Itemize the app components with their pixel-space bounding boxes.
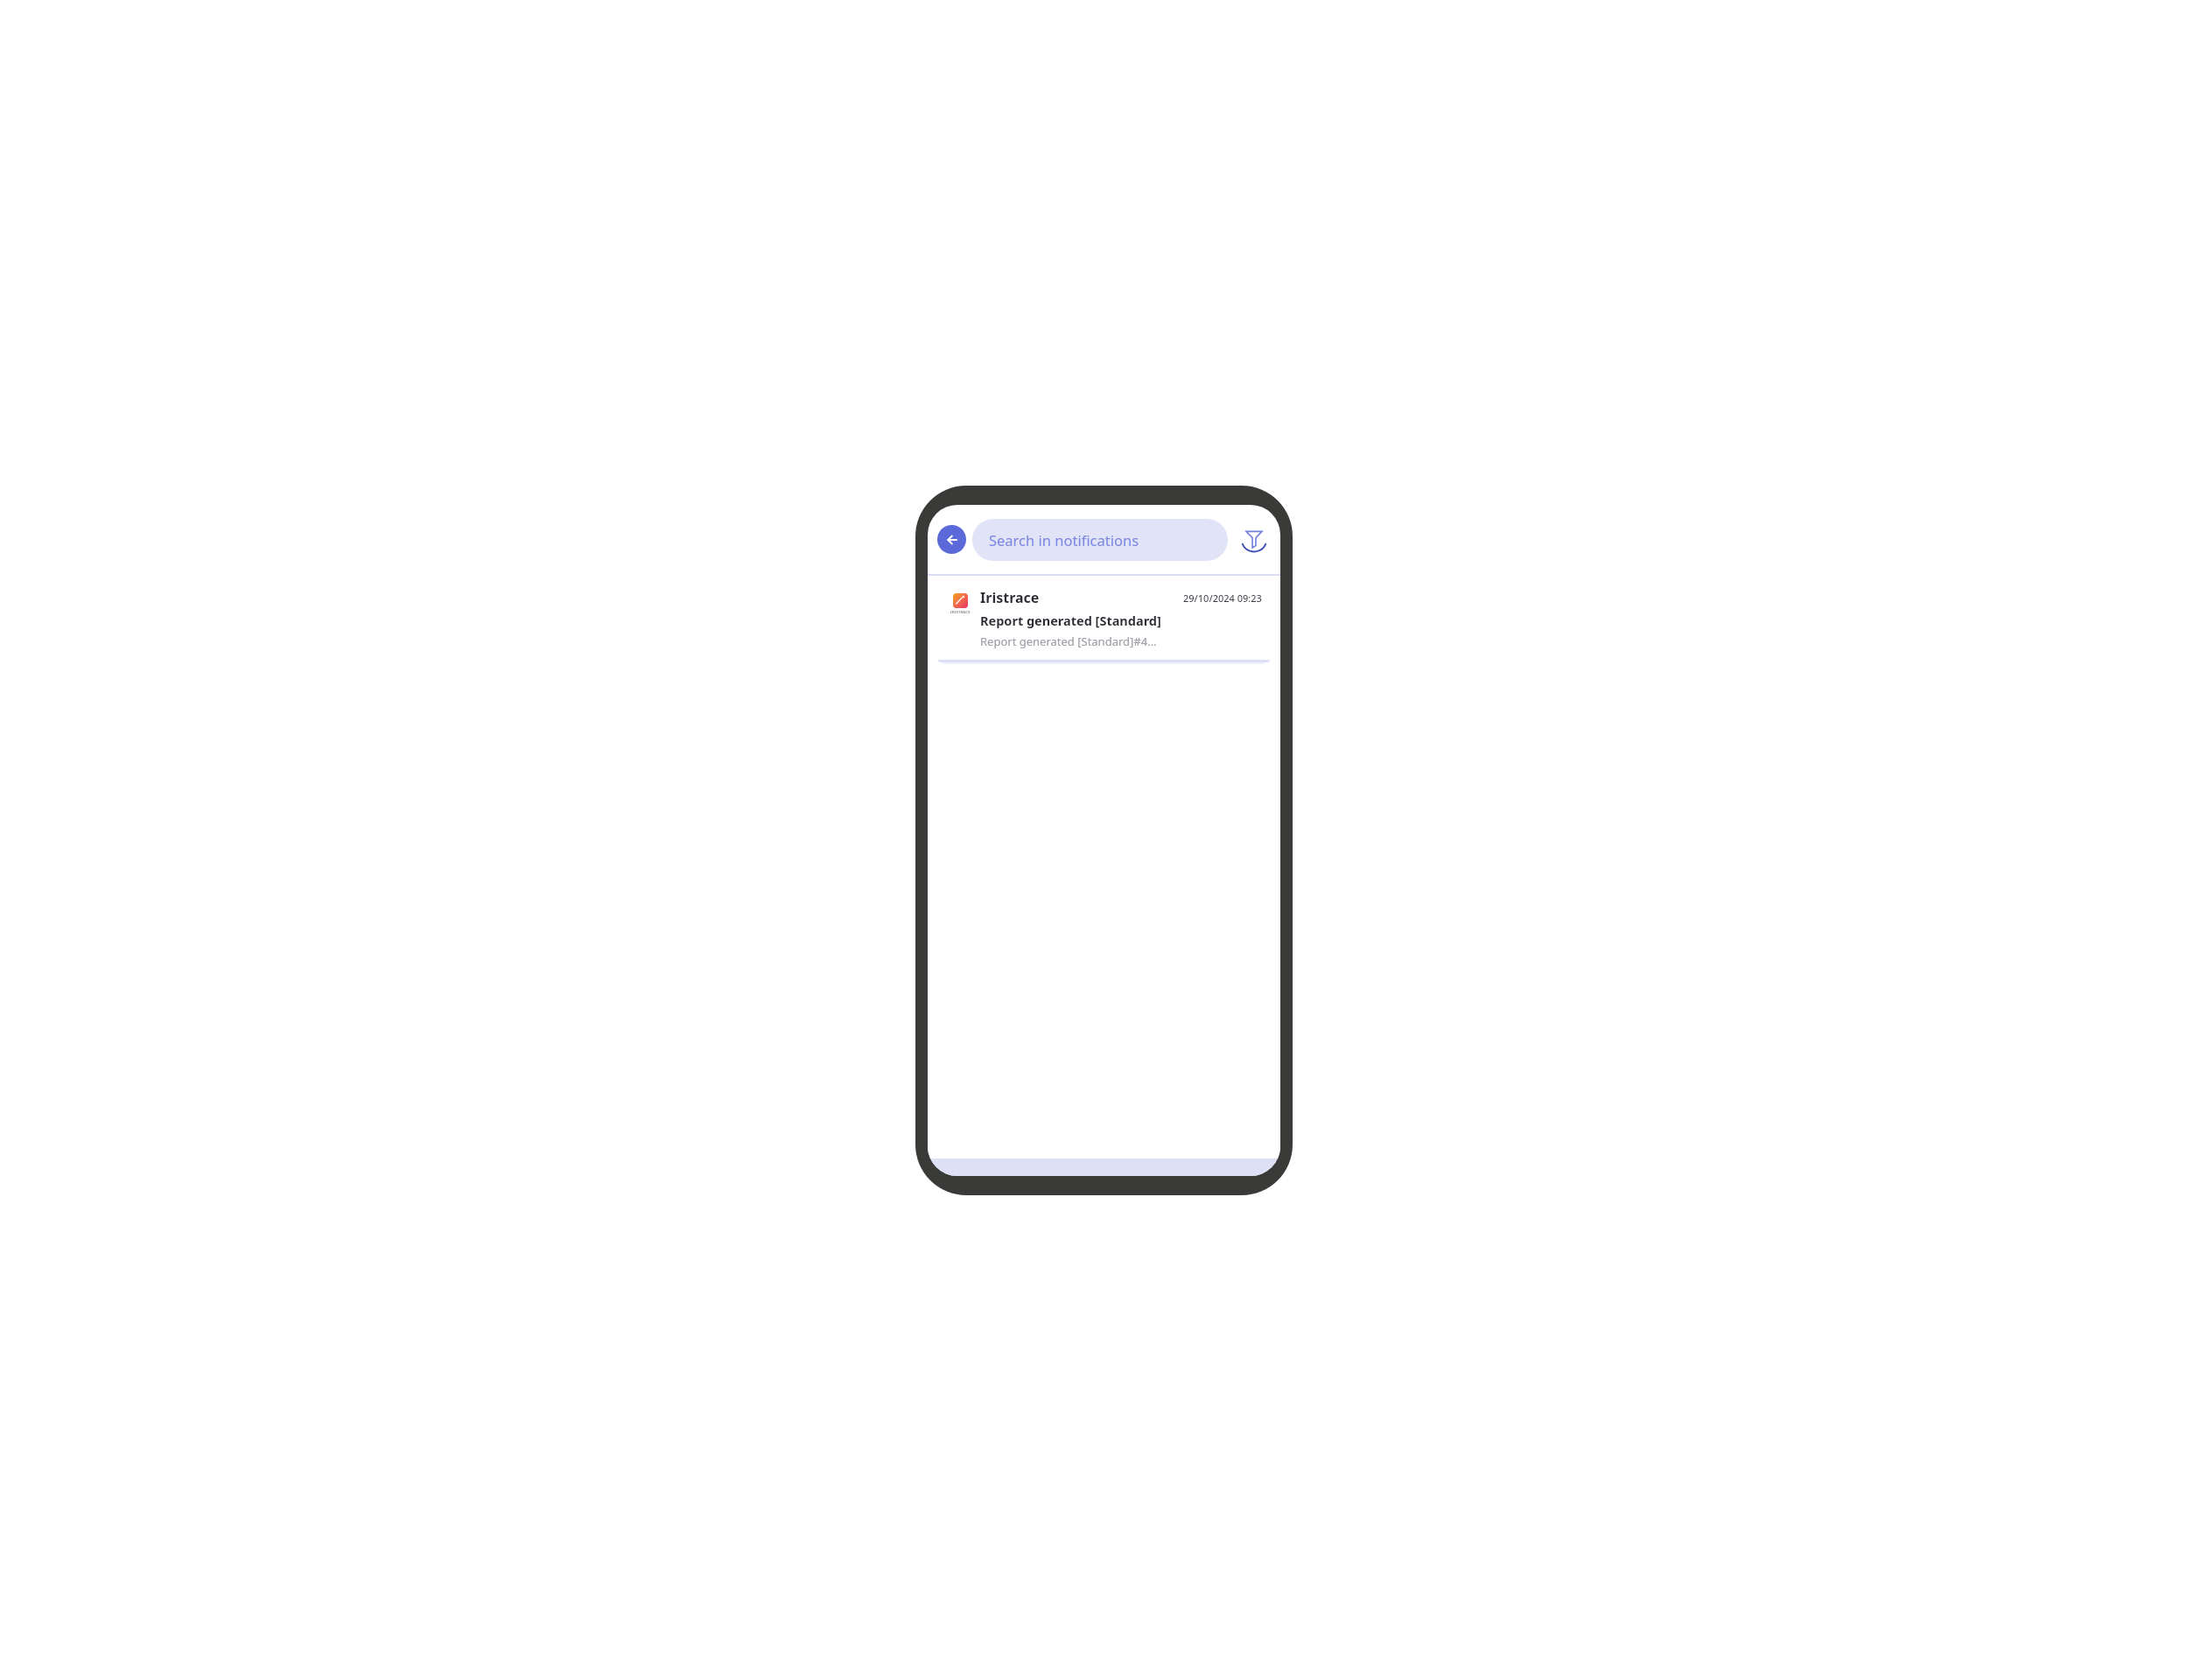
staticText: Search in notifications — [989, 530, 1139, 549]
staticText: Report generated [Standard] — [980, 612, 1161, 629]
button[interactable]: Filter — [1239, 525, 1269, 555]
staticText: Report generated [Standard]#4... — [980, 633, 1157, 649]
staticText: IRISTRACE — [950, 610, 971, 615]
button[interactable]: Search in notifications — [972, 519, 1228, 561]
button[interactable]: Back — [937, 525, 966, 554]
staticText: Iristrace — [980, 588, 1040, 607]
staticText: 29/10/2024 09:23 — [1183, 591, 1262, 605]
button[interactable]: IRISTRACE — [936, 579, 1272, 660]
